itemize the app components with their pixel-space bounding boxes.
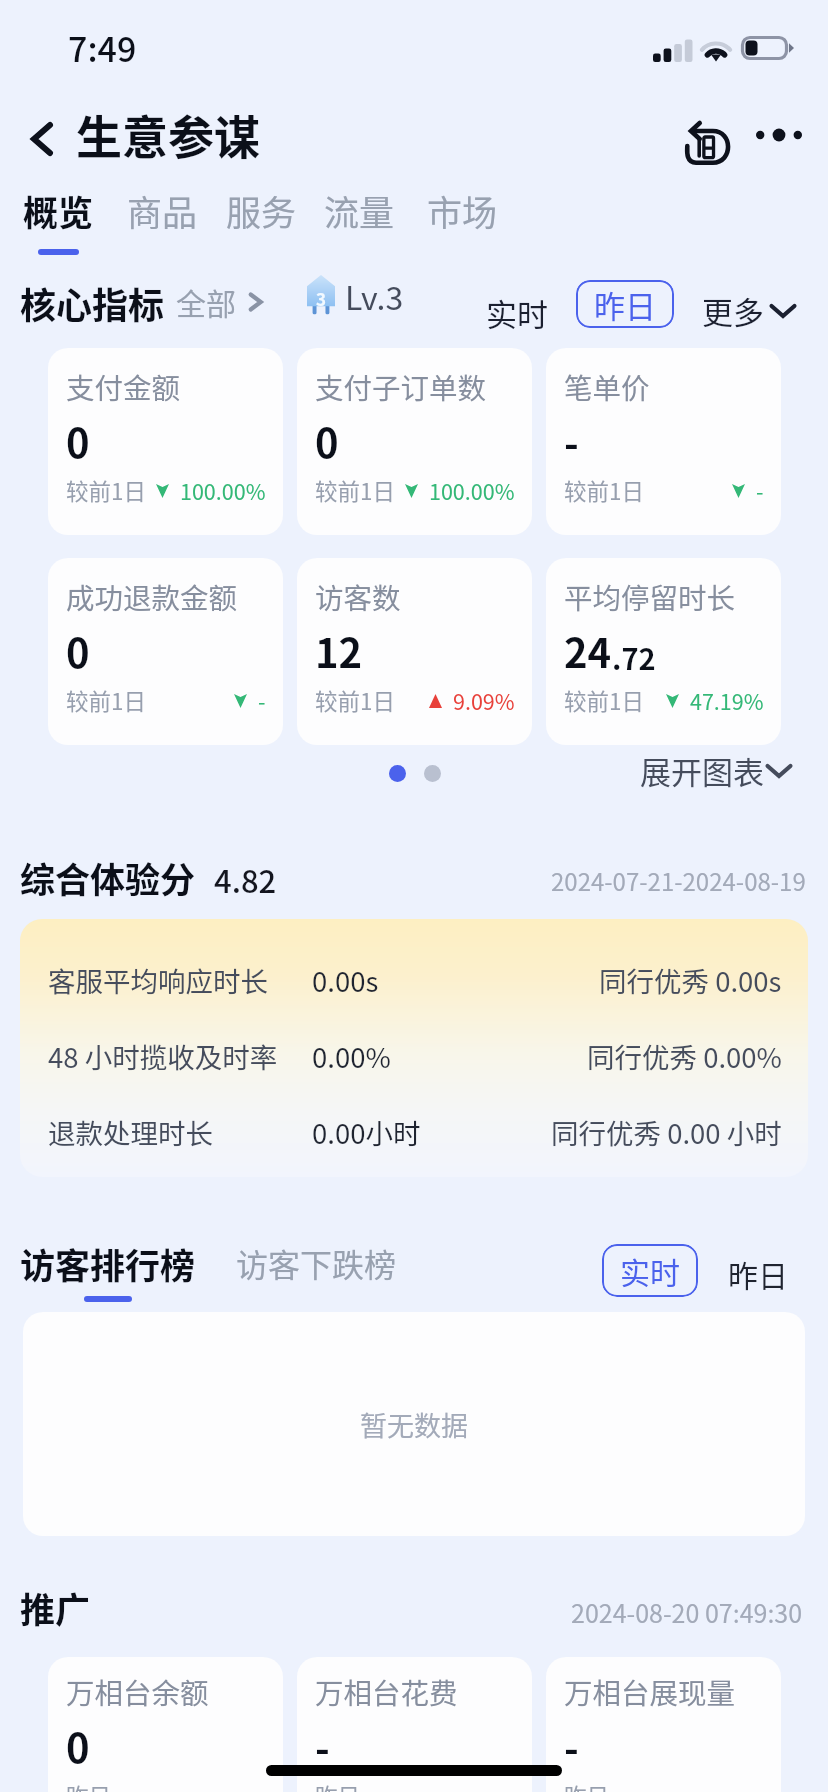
button[interactable]: 3 xyxy=(307,272,404,318)
staticText: 更多 xyxy=(702,288,764,333)
staticText: 综合体验分 xyxy=(20,852,196,903)
staticText: - xyxy=(756,475,764,506)
staticText: 流量 xyxy=(324,185,395,236)
button[interactable]: 服务 xyxy=(224,185,299,257)
button[interactable]: 平均停留时长 xyxy=(546,558,781,745)
staticText: 100.00% xyxy=(429,475,515,506)
staticText: 9.09% xyxy=(453,685,515,716)
button[interactable]: 万相台花费 xyxy=(297,1657,532,1792)
staticText: 展开图表 xyxy=(640,748,764,793)
staticText: 昨日 xyxy=(564,1779,610,1792)
button[interactable]: 商品 xyxy=(125,185,200,257)
staticText: 100.00% xyxy=(180,475,266,506)
staticText: - xyxy=(258,685,266,716)
button[interactable]: 访客数 xyxy=(297,558,532,745)
staticText: 同行优秀 0.00 小时 xyxy=(551,1112,782,1152)
staticText: - xyxy=(564,412,579,470)
staticText: 昨日 xyxy=(315,1779,361,1792)
staticText: 7:49 xyxy=(68,23,137,72)
button[interactable]: More options xyxy=(744,100,814,170)
button[interactable]: Switch to old version xyxy=(664,100,752,188)
button[interactable]: Back xyxy=(7,104,77,174)
staticText: 昨日 xyxy=(66,1779,112,1792)
staticText: 同行优秀 0.00% xyxy=(587,1036,782,1076)
staticText: 较前1日 xyxy=(66,684,146,717)
staticText: - xyxy=(315,1717,330,1775)
staticText: 万相台展现量 xyxy=(564,1671,736,1712)
staticText: 推广 xyxy=(20,1582,91,1633)
button[interactable]: 万相台余额 xyxy=(48,1657,283,1792)
staticText: 0.00小时 xyxy=(312,1112,421,1152)
staticText: 概览 xyxy=(23,185,94,236)
staticText: 服务 xyxy=(226,185,297,236)
staticText: 支付子订单数 xyxy=(315,366,487,407)
button[interactable]: 访客下跌榜 xyxy=(236,1240,397,1286)
staticText: 0 xyxy=(315,412,339,470)
staticText: .72 xyxy=(612,636,656,678)
button[interactable]: 支付金额 xyxy=(48,348,283,535)
button[interactable]: 访客排行榜 xyxy=(20,1238,196,1302)
button[interactable]: 展开图表 xyxy=(640,748,792,793)
staticText: 同行优秀 0.00s xyxy=(599,960,782,1000)
staticText: 核心指标 xyxy=(20,277,165,329)
staticText: 47.19% xyxy=(690,685,764,716)
staticText: 访客排行榜 xyxy=(20,1238,196,1289)
staticText: 生意参谋 xyxy=(76,101,260,168)
staticText: 2024-07-21-2024-08-19 xyxy=(551,863,806,898)
button[interactable]: 昨日 xyxy=(576,280,674,328)
staticText: 暂无数据 xyxy=(360,1405,468,1444)
staticText: 客服平均响应时长 xyxy=(48,960,268,1000)
staticText: 2024-08-20 07:49:30 xyxy=(571,1594,803,1630)
button[interactable]: 笔单价 xyxy=(546,348,781,535)
staticText: Lv.3 xyxy=(345,273,404,319)
button[interactable]: 实时 xyxy=(602,1244,698,1297)
button[interactable]: 更多 xyxy=(694,282,804,339)
staticText: 平均停留时长 xyxy=(564,576,736,617)
staticText: 全部 xyxy=(176,280,236,323)
staticText: 较前1日 xyxy=(315,684,395,717)
button[interactable]: 成功退款金额 xyxy=(48,558,283,745)
staticText: 0 xyxy=(66,412,90,470)
staticText: - xyxy=(564,1717,579,1775)
staticText: 较前1日 xyxy=(564,684,644,717)
staticText: 实时 xyxy=(486,290,548,335)
staticText: 万相台花费 xyxy=(315,1671,458,1712)
staticText: 0 xyxy=(66,1717,90,1775)
staticText: 退款处理时长 xyxy=(48,1112,213,1152)
button[interactable]: 概览 xyxy=(18,185,99,257)
staticText: 成功退款金额 xyxy=(66,576,238,617)
button[interactable]: 支付子订单数 xyxy=(297,348,532,535)
button[interactable]: 实时 xyxy=(476,282,558,343)
staticText: 48 小时揽收及时率 xyxy=(48,1036,278,1076)
button[interactable]: 市场 xyxy=(425,185,500,257)
staticText: 0 xyxy=(66,622,90,680)
staticText: 昨日 xyxy=(594,282,656,327)
staticText: 4.82 xyxy=(214,857,277,902)
staticText: 市场 xyxy=(427,185,498,236)
staticText: 0.00s xyxy=(312,960,379,1000)
staticText: 商品 xyxy=(127,185,198,236)
staticText: 24 xyxy=(564,622,612,680)
staticText: 较前1日 xyxy=(66,474,146,507)
staticText: 3 xyxy=(316,286,327,311)
button[interactable]: 昨日 xyxy=(728,1252,788,1295)
staticText: 笔单价 xyxy=(564,366,650,407)
staticText: 较前1日 xyxy=(564,474,644,507)
button[interactable]: 万相台展现量 xyxy=(546,1657,781,1792)
staticText: 12 xyxy=(315,622,363,680)
staticText: 访客数 xyxy=(315,576,401,617)
staticText: 实时 xyxy=(620,1249,680,1292)
staticText: 支付金额 xyxy=(66,366,181,407)
staticText: 0.00% xyxy=(312,1036,391,1076)
button[interactable]: 流量 xyxy=(322,185,397,257)
button[interactable]: 全部 xyxy=(174,276,265,327)
staticText: 较前1日 xyxy=(315,474,395,507)
staticText: 万相台余额 xyxy=(66,1671,209,1712)
